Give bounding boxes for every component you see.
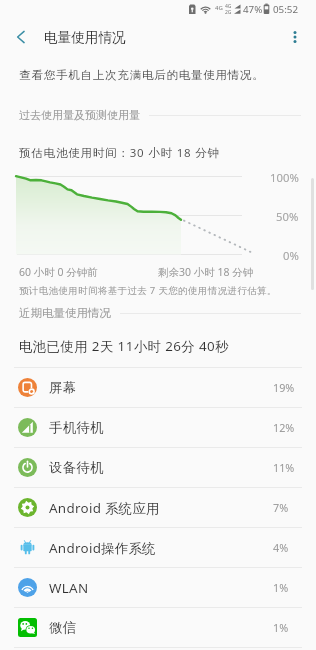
staticText: 19% (273, 380, 295, 395)
staticText: 0% (283, 248, 299, 263)
staticText: 50% (276, 209, 299, 224)
staticText: 设备待机 (49, 459, 104, 476)
button[interactable]: 设备待机 (0, 448, 316, 487)
staticText: 7% (273, 500, 289, 515)
staticText: 手机待机 (49, 419, 104, 436)
button[interactable]: Android操作系统 (0, 528, 316, 567)
staticText: Android操作系统 (49, 539, 156, 557)
staticText: 4% (273, 540, 289, 555)
staticText: 微信 (49, 619, 77, 636)
staticText: 剩余30 小时 18 分钟 (158, 265, 254, 279)
staticText: 4G (215, 4, 223, 12)
staticText: Android 系统应用 (49, 499, 160, 517)
staticText: 1% (273, 620, 289, 635)
staticText: 05:52 (273, 3, 299, 16)
staticText: 电池已使用 2天 11小时 26分 40秒 (19, 337, 229, 355)
staticText: 2G (225, 9, 232, 16)
staticText: 47% (243, 3, 263, 16)
staticText: 12% (273, 420, 295, 435)
staticText: 电量使用情况 (44, 29, 126, 46)
staticText: 1% (273, 580, 289, 595)
staticText: 预估电池使用时间：30 小时 18 分钟 (19, 145, 220, 161)
staticText: 11% (273, 460, 295, 475)
staticText: 查看您手机自上次充满电后的电量使用情况。 (19, 68, 264, 82)
staticText: 屏幕 (49, 379, 77, 396)
button[interactable]: 屏幕 (0, 368, 316, 407)
button[interactable]: More options (281, 23, 309, 51)
button[interactable]: Android 系统应用 (0, 488, 316, 527)
button[interactable]: WLAN (0, 568, 316, 607)
button[interactable]: 微信 (0, 608, 316, 647)
staticText: 预计电池使用时间将基于过去 7 天您的使用情况进行估算。 (19, 284, 277, 297)
staticText: WLAN (49, 579, 89, 597)
staticText: 近期电量使用情况 (19, 306, 111, 320)
staticText: 60 小时 0 分钟前 (19, 265, 98, 279)
staticText: 4G (225, 3, 232, 10)
button[interactable]: 手机待机 (0, 408, 316, 447)
button[interactable]: Back (7, 23, 35, 51)
staticText: 100% (270, 170, 299, 185)
staticText: 过去使用量及预测使用量 (19, 108, 140, 122)
